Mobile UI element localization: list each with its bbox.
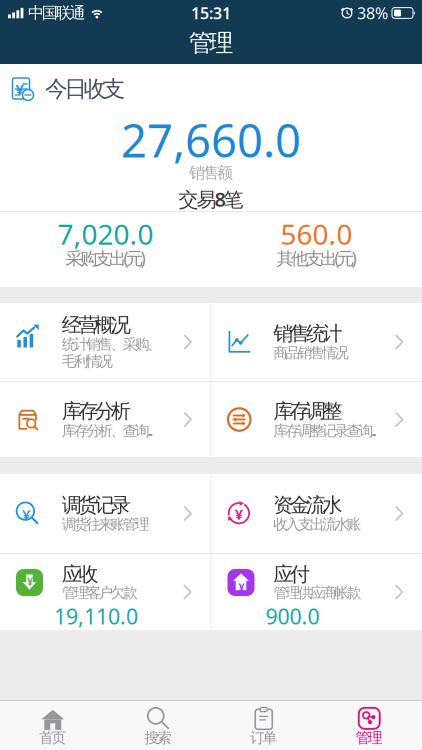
staticText: 管理: [355, 729, 383, 747]
staticText: 库存分析、查询...: [62, 420, 154, 440]
button[interactable]: 首页: [0, 701, 105, 750]
staticText: 7,020.0: [57, 215, 153, 253]
staticText: 管理客户欠款: [62, 584, 138, 602]
staticText: 毛利情况: [62, 352, 113, 370]
staticText: ¥: [238, 580, 244, 594]
staticText: ¥: [22, 505, 30, 524]
staticText: 今日收支: [45, 75, 126, 103]
staticText: 交易8笔: [178, 186, 243, 212]
staticText: 中国联通: [28, 3, 85, 23]
button[interactable]: 库存调整: [211, 382, 422, 457]
staticText: 搜索: [144, 729, 172, 747]
staticText: 收入支出流水账: [273, 515, 361, 533]
staticText: 统计销售、采购、: [62, 335, 162, 353]
staticText: 19,110.0: [54, 602, 138, 630]
staticText: ¥: [27, 574, 33, 588]
staticText: ¥: [15, 79, 23, 99]
staticText: 560.0: [280, 215, 352, 253]
button[interactable]: 管理: [316, 701, 422, 750]
staticText: 管理供应商帐款: [273, 584, 362, 602]
staticText: 15:31: [191, 2, 231, 24]
button[interactable]: ¥: [0, 554, 210, 630]
button[interactable]: ¥: [0, 474, 210, 553]
button[interactable]: 订单: [211, 701, 316, 750]
staticText: 销售额: [189, 163, 233, 183]
staticText: 其他支出(元): [276, 246, 356, 269]
staticText: 调货记录: [62, 493, 131, 517]
staticText: 商品销售情况: [273, 344, 349, 362]
staticText: 库存调整: [273, 399, 342, 423]
staticText: 38%: [357, 2, 388, 24]
staticText: 采购支出(元): [65, 246, 145, 269]
button[interactable]: 经营概况: [0, 303, 210, 381]
staticText: 27,660.0: [121, 110, 301, 170]
staticText: 应收: [62, 562, 98, 587]
staticText: 调货往来账管理: [62, 515, 150, 533]
staticText: 首页: [39, 729, 66, 747]
button[interactable]: 销售统计: [211, 303, 422, 381]
staticText: 库存调整记录查询...: [273, 420, 377, 440]
button[interactable]: 库存分析: [0, 382, 210, 457]
button[interactable]: 搜索: [105, 701, 211, 750]
staticText: 应付: [273, 562, 310, 587]
staticText: 900.0: [265, 602, 319, 630]
staticText: ¥: [235, 504, 243, 524]
staticText: 订单: [250, 729, 277, 747]
staticText: 经营概况: [62, 313, 131, 337]
staticText: 管理: [189, 28, 233, 58]
button[interactable]: ¥: [211, 474, 422, 553]
button[interactable]: ¥: [211, 554, 422, 630]
staticText: 资金流水: [273, 493, 342, 517]
staticText: 销售统计: [273, 321, 342, 346]
staticText: 库存分析: [62, 399, 131, 423]
